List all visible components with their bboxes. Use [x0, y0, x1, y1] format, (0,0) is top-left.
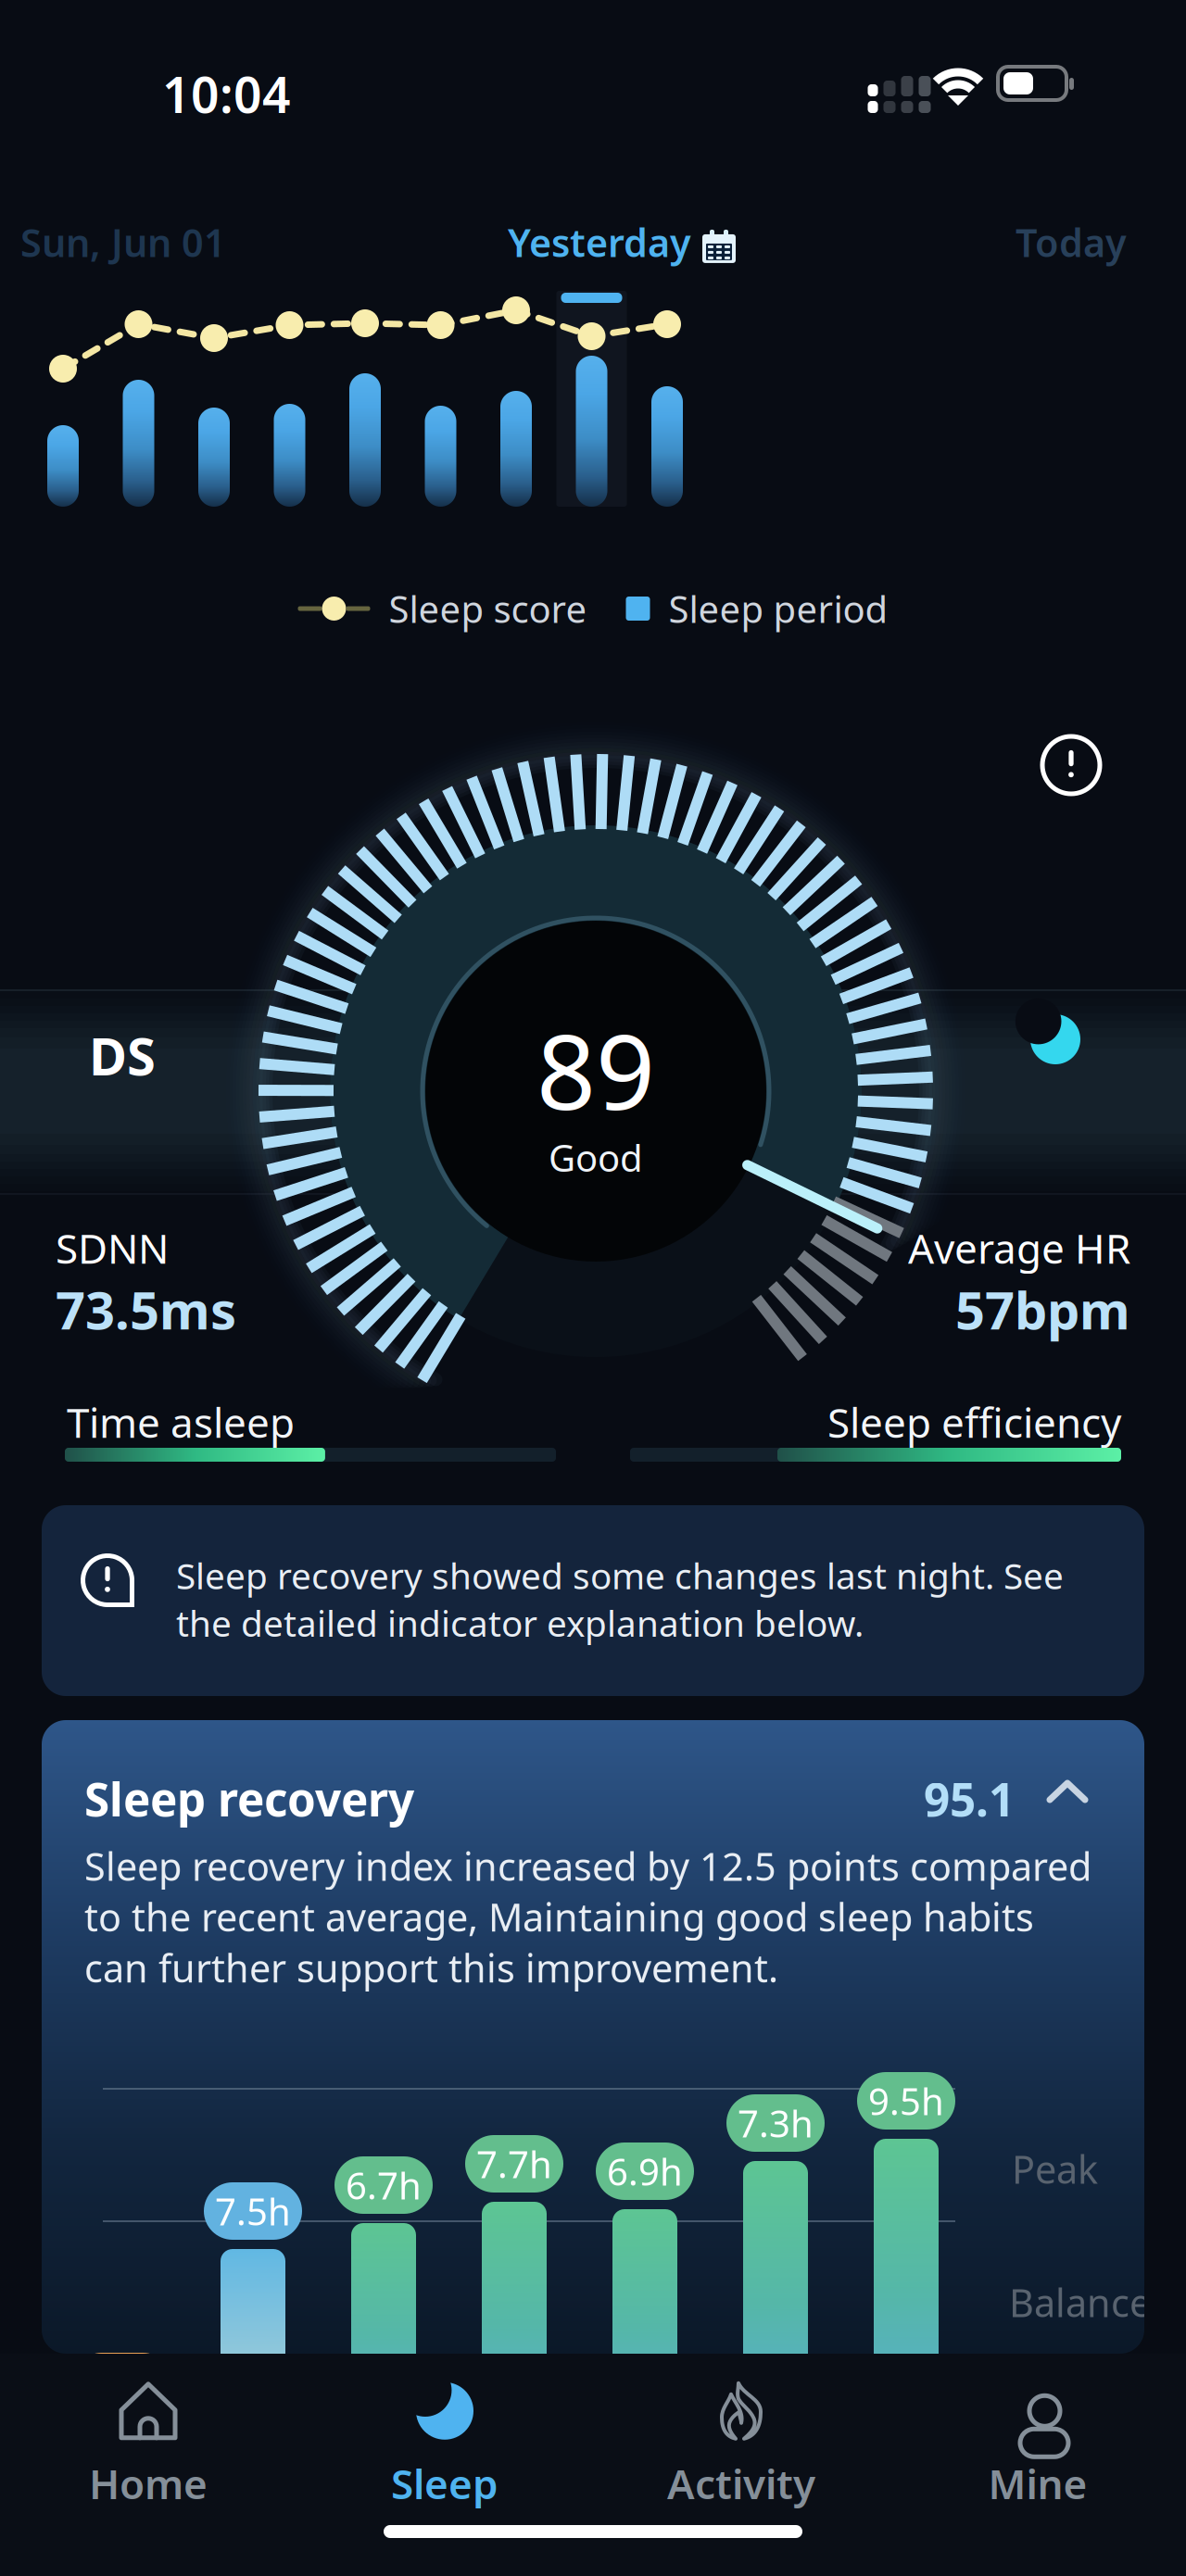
- staticText: Sleep recovery index increased by 12.5 p…: [84, 1841, 1091, 1993]
- button[interactable]: Sleep: [296, 2364, 593, 2527]
- staticText: 95.1: [924, 1768, 1015, 1829]
- button[interactable]: Today: [1008, 206, 1134, 279]
- staticText: Average HR: [908, 1221, 1130, 1275]
- staticText: 7.3h: [738, 2098, 814, 2148]
- staticText: Mine: [988, 2456, 1087, 2510]
- staticText: 9.5h: [868, 2076, 944, 2125]
- button[interactable]: Sun, Jun 01: [13, 206, 233, 279]
- button[interactable]: Information: [1033, 727, 1109, 803]
- button[interactable]: Home: [0, 2364, 296, 2527]
- staticText: 10:04: [162, 61, 291, 127]
- staticText: Sun, Jun 01: [20, 217, 226, 268]
- staticText: 73.5ms: [56, 1275, 236, 1344]
- staticText: Sleep period: [650, 584, 888, 633]
- staticText: Good: [549, 1133, 643, 1182]
- staticText: 6.9h: [607, 2147, 683, 2196]
- staticText: Sleep: [391, 2456, 498, 2510]
- staticText: Peak: [1012, 2143, 1098, 2194]
- button[interactable]: Activity: [593, 2364, 889, 2527]
- staticText: 57bpm: [955, 1275, 1130, 1344]
- staticText: 7.7h: [476, 2139, 552, 2188]
- staticText: Time asleep: [67, 1395, 295, 1449]
- staticText: Sleep score: [370, 584, 587, 633]
- staticText: Activity: [667, 2456, 815, 2510]
- staticText: Sleep recovery showed some changes last …: [176, 1552, 1064, 1647]
- staticText: Yesterday: [508, 217, 691, 268]
- staticText: Balance: [1009, 2277, 1151, 2328]
- staticText: Today: [1016, 217, 1127, 268]
- staticText: DS: [89, 1021, 156, 1090]
- staticText: Sleep efficiency: [827, 1395, 1121, 1449]
- staticText: Sleep recovery: [84, 1768, 414, 1829]
- staticText: 6.7h: [346, 2160, 422, 2210]
- staticText: SDNN: [56, 1221, 169, 1275]
- button[interactable]: Yesterday: [508, 206, 736, 279]
- staticText: 7.5h: [215, 2186, 291, 2236]
- staticText: 89: [536, 1000, 655, 1138]
- button[interactable]: Mine: [889, 2364, 1186, 2527]
- staticText: 7.0h: [84, 2357, 160, 2406]
- staticText: Home: [89, 2456, 208, 2510]
